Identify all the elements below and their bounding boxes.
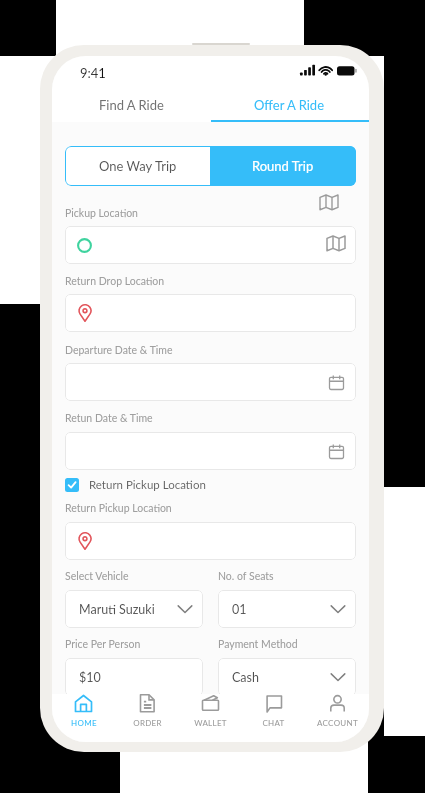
button[interactable]: ORDER: [116, 694, 179, 728]
button[interactable]: $10: [65, 658, 203, 696]
staticText: ORDER: [133, 718, 162, 728]
staticText: Offer A Ride: [254, 97, 325, 113]
button[interactable]: ACCOUNT: [306, 694, 369, 728]
staticText: $10: [79, 670, 101, 685]
staticText: Return Pickup Location: [65, 502, 172, 515]
button[interactable]: 01: [218, 590, 356, 628]
button[interactable]: Round Trip: [210, 146, 356, 186]
button[interactable]: Open map: [318, 192, 340, 214]
staticText: Retun Date & Time: [65, 412, 153, 425]
staticText: CHAT: [262, 718, 285, 728]
button[interactable]: [65, 522, 356, 560]
staticText: 01: [232, 602, 247, 617]
staticText: Select Vehicle: [65, 570, 129, 583]
button[interactable]: CHAT: [242, 694, 305, 728]
button[interactable]: Return Pickup Location: [65, 478, 206, 492]
staticText: Return Pickup Location: [89, 478, 206, 492]
staticText: Find A Ride: [99, 97, 164, 113]
staticText: HOME: [71, 718, 97, 728]
staticText: Cash: [232, 670, 259, 685]
staticText: No. of Seats: [218, 570, 274, 583]
staticText: Round Trip: [252, 158, 314, 174]
staticText: Payment Method: [218, 638, 298, 651]
staticText: WALLET: [194, 718, 227, 728]
staticText: Return Drop Location: [65, 275, 165, 288]
staticText: Departure Date & Time: [65, 344, 173, 357]
button[interactable]: WALLET: [179, 694, 242, 728]
staticText: One Way Trip: [99, 158, 177, 174]
staticText: Price Per Person: [65, 638, 141, 651]
button[interactable]: Offer A Ride: [210, 88, 369, 122]
button[interactable]: HOME: [52, 694, 115, 728]
button[interactable]: [65, 226, 356, 264]
button[interactable]: [65, 294, 356, 332]
staticText: 9:41: [80, 65, 106, 81]
button[interactable]: Maruti Suzuki: [65, 590, 203, 628]
button[interactable]: Cash: [218, 658, 356, 696]
button[interactable]: Find A Ride: [52, 88, 210, 122]
staticText: Maruti Suzuki: [79, 602, 155, 617]
button[interactable]: [65, 432, 356, 470]
staticText: Pickup Location: [65, 207, 138, 220]
button[interactable]: One Way Trip: [65, 146, 210, 186]
staticText: ACCOUNT: [317, 718, 358, 728]
button[interactable]: [65, 363, 356, 401]
